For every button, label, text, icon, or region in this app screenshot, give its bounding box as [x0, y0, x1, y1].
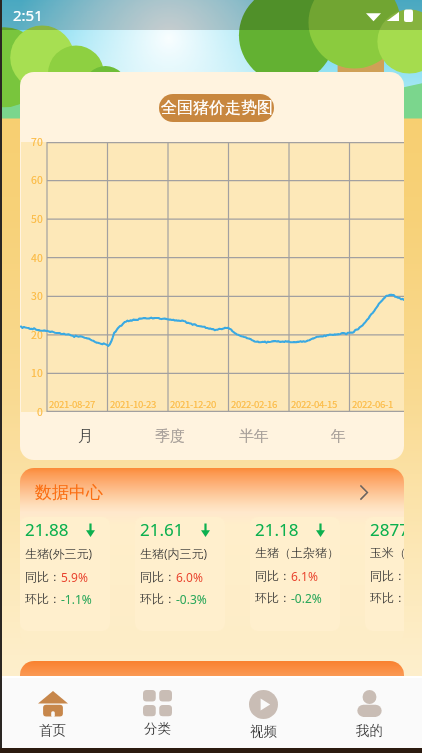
staticText: 生猪（土杂猪） [255, 545, 339, 560]
button[interactable]: 视频 [210, 678, 316, 753]
staticText: 2877 [370, 518, 404, 541]
button[interactable]: 数据中心 [20, 468, 404, 517]
button[interactable]: 全国猪价走势图 [159, 94, 274, 122]
button[interactable]: 半年 [212, 413, 296, 460]
staticText: 21.61 [140, 518, 184, 541]
staticText: 21.88 [25, 518, 69, 541]
staticText: 季度 [155, 427, 185, 446]
staticText: 2:51 [13, 5, 43, 25]
button[interactable]: 月 [43, 413, 128, 460]
staticText: 全国猪价走势图 [161, 98, 273, 118]
staticText: 生猪(外三元) [25, 545, 93, 561]
staticText: 年 [331, 427, 346, 446]
staticText: 环比： [25, 591, 61, 606]
staticText: 同比： [25, 569, 61, 584]
button[interactable]: 首页 [0, 678, 105, 753]
staticText: 5.9% [61, 569, 88, 585]
staticText: 半年 [239, 427, 269, 446]
other: More data [360, 486, 368, 499]
staticText: 环比： [255, 590, 291, 605]
button[interactable]: 我的 [316, 678, 422, 753]
staticText: -1.1% [61, 591, 92, 607]
staticText: 6.0% [176, 569, 203, 585]
staticText: 同比： [370, 568, 404, 583]
staticText: 6.1% [291, 568, 318, 584]
button[interactable]: 21.61 [135, 517, 225, 631]
staticText: -0.3% [176, 591, 207, 607]
staticText: 分类 [144, 720, 171, 737]
staticText: 首页 [39, 722, 66, 739]
staticText: 同比： [140, 569, 176, 584]
staticText: -0.2% [291, 590, 322, 606]
staticText: 月 [78, 427, 93, 446]
button[interactable]: 21.88 [20, 517, 110, 631]
staticText: 数据中心 [35, 482, 103, 503]
button[interactable]: 2877 [365, 517, 404, 631]
button[interactable]: 年 [296, 413, 380, 460]
staticText: 生猪(内三元) [140, 545, 208, 561]
button[interactable]: 分类 [105, 678, 210, 753]
staticText: 我的 [356, 722, 383, 739]
staticText: 同比： [255, 568, 291, 583]
staticText: 21.18 [255, 518, 299, 541]
staticText: 玉米（饲料） [370, 545, 404, 560]
staticText: 环比： [370, 590, 404, 605]
button[interactable]: 21.18 [250, 517, 340, 631]
staticText: 视频 [250, 723, 277, 740]
button[interactable]: 季度 [128, 413, 212, 460]
staticText: 环比： [140, 591, 176, 606]
